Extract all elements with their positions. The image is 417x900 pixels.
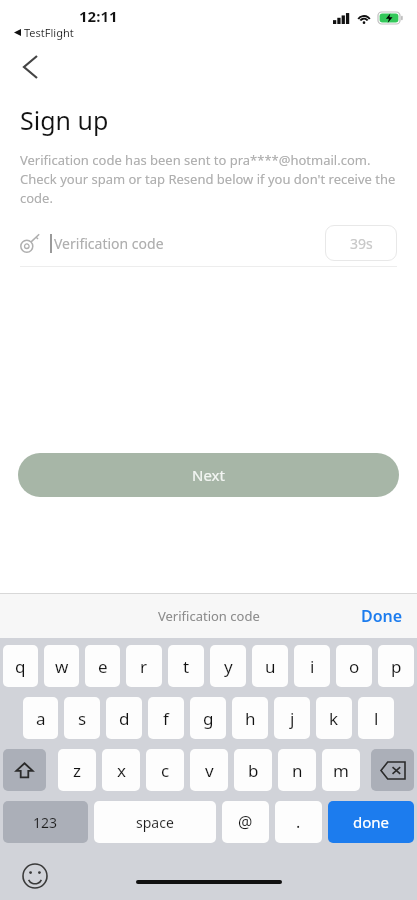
staticText: m [333,759,349,782]
staticText: w [55,655,69,678]
staticText: r [140,655,148,678]
staticText: y [224,655,233,678]
button[interactable]: x [102,749,140,791]
staticText: 39s [350,234,373,253]
button[interactable]: s [64,697,100,739]
button[interactable]: done [328,801,414,843]
button[interactable]: z [58,749,96,791]
staticText: Verification code [54,234,164,253]
button[interactable]: k [316,697,352,739]
button[interactable]: Done [361,605,403,627]
button[interactable]: o [336,645,372,687]
staticText: s [78,707,87,730]
button[interactable]: Shift [3,749,46,791]
staticText: o [349,655,360,678]
button[interactable]: space [94,801,216,843]
staticText: 123 [33,813,58,832]
staticText: i [310,655,315,678]
staticText: g [203,707,214,730]
staticText: TestFlight [24,25,74,40]
staticText: k [329,707,339,730]
staticText: b [248,759,259,782]
button[interactable]: 39s [325,225,397,261]
staticText: u [265,655,276,678]
button[interactable]: Back [8,45,52,89]
button[interactable]: a [23,697,58,739]
button[interactable]: q [3,645,38,687]
button[interactable]: f [148,697,184,739]
button[interactable]: g [190,697,226,739]
button[interactable]: l [358,697,394,739]
staticText: a [36,707,46,730]
staticText: Done [361,605,403,627]
staticText: t [183,655,190,678]
staticText: Verification code has been sent to pra**… [20,151,397,207]
button[interactable]: r [126,645,162,687]
staticText: h [245,707,256,730]
staticText: @ [238,811,253,833]
staticText: 12:11 [79,6,118,26]
staticText: e [98,655,108,678]
button[interactable]: v [190,749,228,791]
button[interactable]: Emoji [22,863,48,889]
staticText: done [353,812,390,832]
staticText: q [15,655,26,678]
button[interactable]: w [44,645,79,687]
button[interactable]: i [294,645,330,687]
staticText: z [73,759,81,782]
staticText: n [292,759,303,782]
staticText: c [161,759,170,782]
button[interactable]: t [168,645,204,687]
staticText: . [296,811,301,833]
button[interactable]: y [210,645,246,687]
button[interactable]: m [322,749,360,791]
button[interactable]: . [275,801,322,843]
button[interactable]: p [378,645,414,687]
staticText: d [119,707,130,730]
staticText: Verification code [158,607,260,625]
button[interactable]: b [234,749,272,791]
button[interactable]: e [85,645,120,687]
staticText: j [290,707,295,730]
button[interactable]: d [106,697,142,739]
staticText: l [374,707,379,730]
staticText: Sign up [20,103,109,137]
button[interactable]: @ [222,801,269,843]
button[interactable]: h [232,697,268,739]
staticText: f [163,707,169,730]
staticText: x [117,759,126,782]
staticText: p [391,655,402,678]
button[interactable]: u [252,645,288,687]
staticText: v [205,759,214,782]
staticText: Next [192,465,225,485]
button[interactable]: 123 [3,801,88,843]
button[interactable]: Next [18,453,399,497]
button[interactable]: Backspace [371,749,414,791]
button[interactable]: n [278,749,316,791]
button[interactable]: j [274,697,310,739]
staticText: space [136,813,174,832]
button[interactable]: c [146,749,184,791]
